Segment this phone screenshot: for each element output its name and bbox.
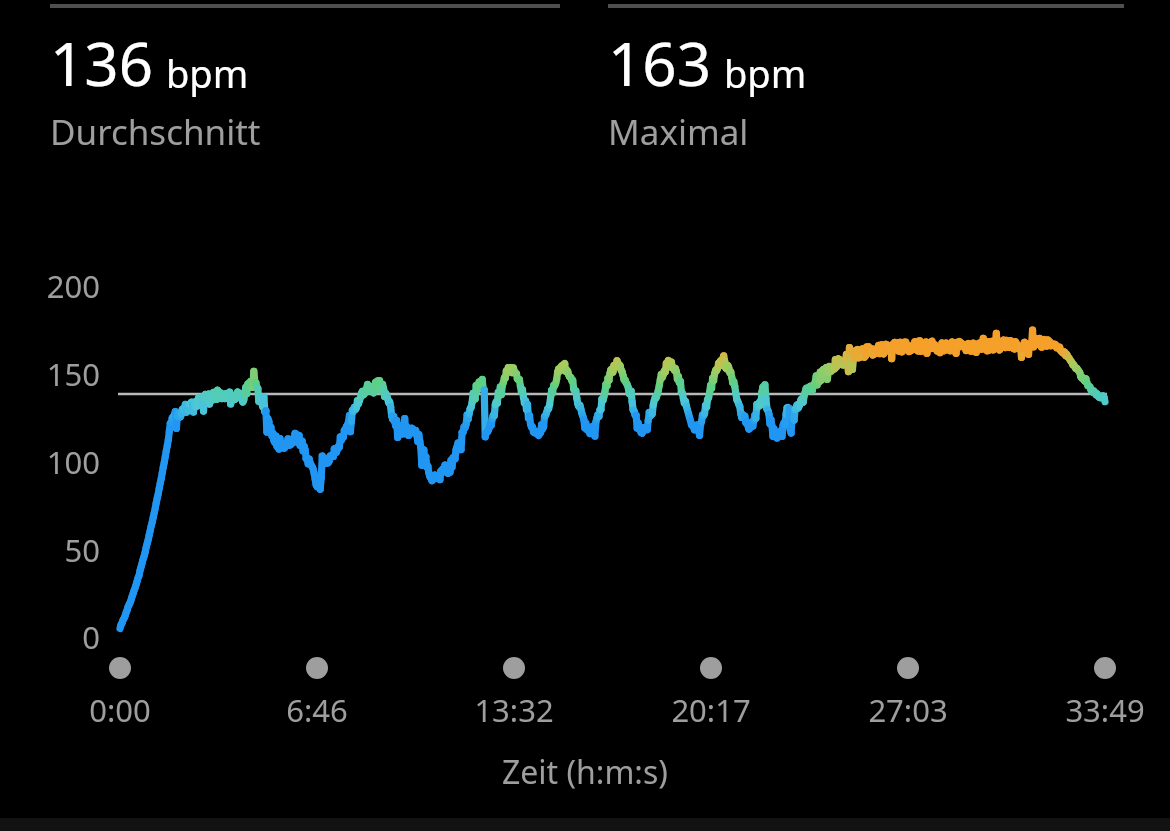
staticText: 163 <box>608 22 711 104</box>
staticText: 13:32 <box>474 689 554 731</box>
staticText: Zeit (h:m:s) <box>502 750 668 794</box>
button[interactable]: 163 <box>608 0 1124 134</box>
staticText: bpm <box>166 47 249 99</box>
staticText: 20:17 <box>671 689 751 731</box>
staticText: 136 <box>50 22 153 104</box>
staticText: bpm <box>724 47 807 99</box>
staticText: 27:03 <box>868 689 948 731</box>
staticText: Maximal <box>608 108 749 156</box>
staticText: 0 <box>82 616 100 658</box>
staticText: 33:49 <box>1065 689 1145 731</box>
staticText: 50 <box>64 529 100 571</box>
staticText: Durchschnitt <box>50 108 261 156</box>
staticText: 100 <box>46 441 100 483</box>
staticText: 150 <box>46 353 100 395</box>
button[interactable]: 136 <box>50 0 560 134</box>
button[interactable]: Herzfrequenzverlauf <box>0 0 1170 831</box>
staticText: 200 <box>46 265 100 307</box>
staticText: 0:00 <box>89 689 151 731</box>
staticText: 6:46 <box>286 689 348 731</box>
